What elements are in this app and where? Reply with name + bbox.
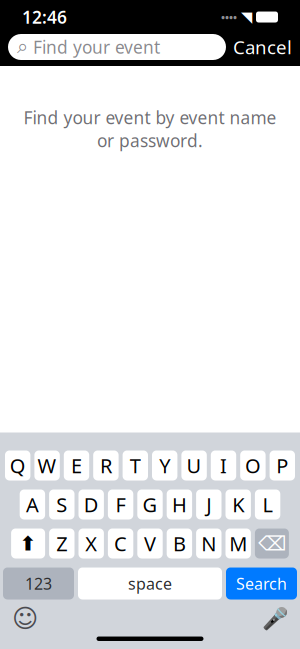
button[interactable]: F	[108, 489, 133, 519]
staticText: ⬆	[20, 532, 37, 555]
button[interactable]: D	[78, 489, 104, 519]
button[interactable]: W	[34, 450, 60, 480]
button[interactable]: Z	[49, 528, 74, 558]
button[interactable]: X	[78, 528, 104, 558]
staticText: Find your event by event name	[23, 106, 276, 129]
button[interactable]: V	[137, 528, 163, 558]
staticText: C	[114, 530, 127, 557]
staticText: I	[220, 452, 227, 479]
button[interactable]: N	[196, 528, 221, 558]
staticText: E	[71, 452, 82, 479]
button[interactable]: Dictation	[260, 605, 290, 631]
staticText: H	[172, 491, 187, 518]
staticText: 12:46	[22, 5, 67, 28]
button[interactable]: H	[167, 489, 192, 519]
button[interactable]: R	[93, 450, 119, 480]
button[interactable]: Delete	[255, 528, 289, 558]
button[interactable]: G	[137, 489, 163, 519]
staticText: A	[26, 491, 39, 518]
staticText: Cancel	[233, 35, 292, 59]
staticText: or password.	[97, 129, 203, 152]
button[interactable]: I	[211, 450, 236, 480]
staticText: O	[245, 452, 261, 479]
staticText: T	[130, 452, 141, 479]
staticText: K	[232, 491, 244, 518]
button[interactable]: K	[225, 489, 251, 519]
staticText: Find your event	[33, 35, 160, 58]
staticText: X	[85, 530, 97, 557]
staticText: ◥	[241, 9, 252, 25]
button[interactable]: B	[167, 528, 192, 558]
button[interactable]: Shift	[11, 528, 45, 558]
staticText: V	[144, 530, 156, 557]
button[interactable]: J	[196, 489, 221, 519]
staticText: S	[56, 491, 67, 518]
button[interactable]: Y	[152, 450, 177, 480]
staticText: Q	[10, 452, 26, 479]
staticText: B	[173, 530, 186, 557]
button[interactable]: A	[20, 489, 45, 519]
staticText: L	[263, 491, 273, 518]
staticText: ••••	[221, 10, 237, 24]
button[interactable]: Q	[5, 450, 30, 480]
button[interactable]: Cancel	[233, 35, 292, 59]
button[interactable]: space	[78, 567, 222, 599]
staticText: Z	[56, 530, 67, 557]
staticText: 123	[25, 573, 52, 594]
button[interactable]: T	[123, 450, 148, 480]
button[interactable]: U	[181, 450, 207, 480]
staticText: J	[206, 491, 211, 518]
staticText: M	[229, 530, 247, 557]
staticText: U	[187, 452, 202, 479]
button[interactable]: P	[270, 450, 295, 480]
button[interactable]: ⌕	[8, 34, 226, 60]
button[interactable]: C	[108, 528, 133, 558]
button[interactable]: E	[64, 450, 89, 480]
staticText: G	[142, 491, 157, 518]
staticText: W	[38, 452, 57, 479]
staticText: F	[116, 491, 126, 518]
staticText: space	[128, 573, 172, 594]
button[interactable]: Search	[226, 567, 297, 599]
staticText: R	[100, 452, 112, 479]
button[interactable]: L	[255, 489, 280, 519]
button[interactable]: O	[240, 450, 266, 480]
staticText: P	[276, 452, 288, 479]
button[interactable]: S	[49, 489, 74, 519]
staticText: Y	[159, 452, 170, 479]
staticText: 🎤	[261, 606, 288, 631]
button[interactable]: Emoji	[10, 605, 40, 631]
staticText: ☺	[12, 604, 38, 633]
button[interactable]: 123	[3, 567, 74, 599]
staticText: ⌕	[17, 37, 28, 57]
staticText: ⌫	[258, 532, 286, 555]
staticText: Search	[236, 573, 287, 594]
button[interactable]: M	[225, 528, 251, 558]
staticText: D	[84, 491, 99, 518]
staticText: N	[201, 530, 216, 557]
